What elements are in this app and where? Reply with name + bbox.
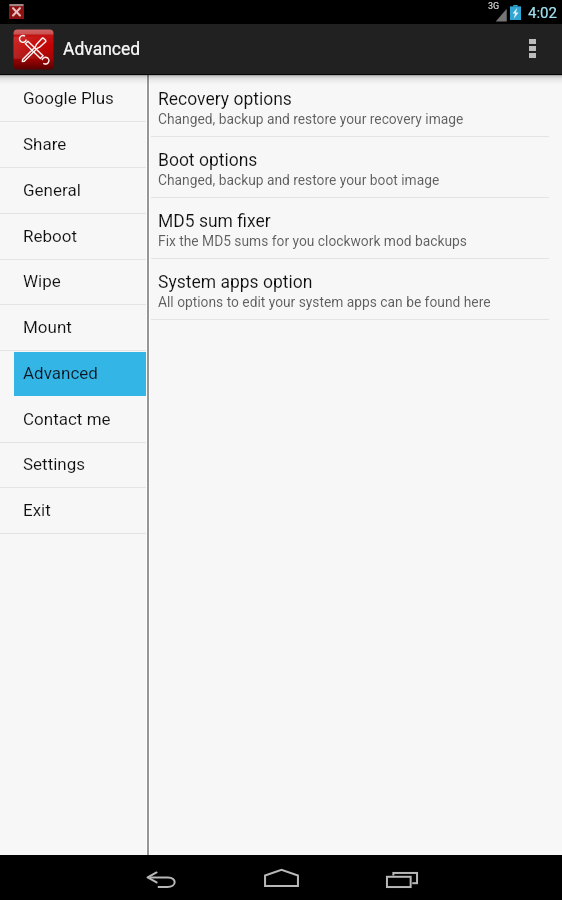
staticText: MD5 sum fixer — [158, 211, 271, 232]
staticText: General — [23, 180, 81, 200]
staticText: 3G — [488, 1, 500, 12]
staticText: Advanced — [63, 39, 141, 60]
staticText: Boot options — [158, 150, 258, 171]
staticText: Wipe — [23, 271, 61, 291]
button[interactable]: Wipe — [0, 259, 146, 305]
staticText: 4:02 — [528, 4, 557, 22]
button[interactable]: Home — [253, 855, 309, 900]
staticText: Contact me — [23, 409, 111, 429]
staticText: Mount — [23, 317, 72, 337]
staticText: Advanced — [23, 363, 98, 383]
staticText: Exit — [23, 500, 51, 520]
button[interactable]: Boot options — [150, 137, 562, 198]
button[interactable]: Settings — [0, 442, 146, 488]
button[interactable]: Contact me — [0, 397, 146, 443]
button[interactable]: Advanced — [0, 351, 146, 397]
button[interactable]: Share — [0, 122, 146, 168]
staticText: Changed, backup and restore your recover… — [158, 111, 464, 127]
button[interactable]: Back — [134, 855, 190, 900]
button[interactable]: Reboot — [0, 214, 146, 260]
staticText: System apps option — [158, 272, 313, 293]
button[interactable]: Mount — [0, 305, 146, 351]
button[interactable]: Exit — [0, 488, 146, 534]
staticText: All options to edit your system apps can… — [158, 294, 491, 310]
button[interactable]: Recovery options — [150, 76, 562, 137]
button[interactable]: System apps option — [150, 259, 562, 320]
button[interactable]: More options — [503, 24, 562, 74]
staticText: Google Plus — [23, 88, 114, 108]
staticText: Reboot — [23, 226, 77, 246]
staticText: Changed, backup and restore your boot im… — [158, 172, 440, 188]
staticText: Settings — [23, 454, 86, 474]
staticText: Share — [23, 134, 67, 154]
button[interactable]: Recents — [374, 855, 430, 900]
button[interactable]: General — [0, 168, 146, 214]
button[interactable]: MD5 sum fixer — [150, 198, 562, 259]
staticText: Recovery options — [158, 89, 292, 110]
button[interactable]: Google Plus — [0, 76, 146, 122]
staticText: Fix the MD5 sums for you clockwork mod b… — [158, 233, 467, 249]
